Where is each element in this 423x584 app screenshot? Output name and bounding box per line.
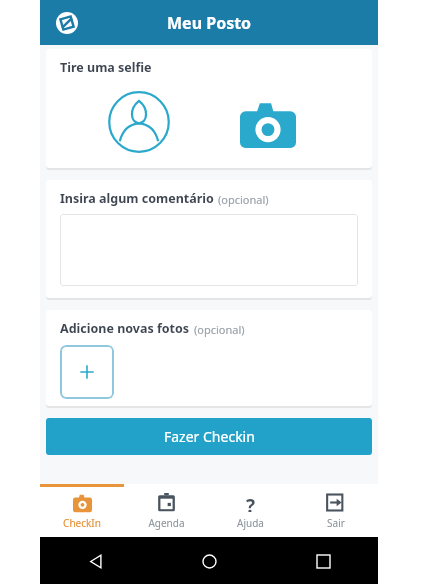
staticText: Sair bbox=[327, 516, 345, 530]
staticText: Insira algum comentário bbox=[60, 190, 214, 207]
button[interactable]: Agenda bbox=[124, 484, 208, 537]
button[interactable]: Recents bbox=[308, 546, 338, 576]
button[interactable]: Back bbox=[80, 546, 110, 576]
staticText: Adicione novas fotos bbox=[60, 320, 190, 337]
staticText: (opcional) bbox=[194, 322, 245, 337]
button[interactable]: Comment field bbox=[60, 214, 358, 286]
staticText: Ajuda bbox=[237, 516, 264, 530]
staticText: CheckIn bbox=[63, 516, 101, 530]
staticText: Meu Posto bbox=[167, 12, 252, 34]
button[interactable]: Selfie preview bbox=[104, 87, 174, 157]
staticText: Agenda bbox=[148, 516, 185, 530]
button[interactable]: ? bbox=[208, 484, 293, 537]
button[interactable]: Take photo bbox=[236, 90, 300, 154]
button[interactable]: Fazer Checkin bbox=[46, 418, 372, 455]
button[interactable]: CheckIn bbox=[40, 484, 124, 537]
button[interactable]: Sair bbox=[293, 484, 378, 537]
button[interactable]: Add photo bbox=[60, 345, 114, 399]
staticText: Tire uma selfie bbox=[60, 59, 152, 76]
staticText: (opcional) bbox=[218, 192, 269, 207]
button[interactable]: Menu bbox=[52, 8, 82, 38]
staticText: Fazer Checkin bbox=[164, 427, 255, 446]
staticText: ? bbox=[246, 493, 256, 512]
button[interactable]: Home bbox=[194, 546, 224, 576]
